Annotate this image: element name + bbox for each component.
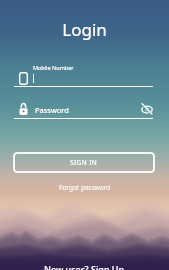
staticText: SIGN IN — [70, 158, 98, 167]
staticText: Login — [0, 18, 169, 41]
button[interactable]: New user? Sign Up — [0, 263, 169, 270]
staticText: New user? Sign Up — [44, 263, 125, 270]
button[interactable]: SIGN IN — [13, 152, 155, 173]
button[interactable]: Show password — [141, 103, 153, 116]
staticText: Mobile Number — [33, 64, 74, 71]
staticText: Password — [35, 105, 69, 115]
button[interactable]: Forgot password — [59, 183, 111, 192]
